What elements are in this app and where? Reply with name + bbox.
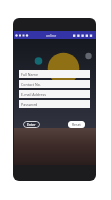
button[interactable]: Enter <box>23 121 40 128</box>
staticText: E-mail Address <box>21 92 46 97</box>
staticText: online <box>46 33 57 38</box>
other: Signal and battery <box>73 33 95 38</box>
button[interactable]: E-mail Address <box>19 90 90 98</box>
staticText: Reset <box>72 122 81 127</box>
button[interactable]: Password <box>19 100 90 108</box>
other: Notifications <box>15 33 30 38</box>
button[interactable]: Contact No. <box>19 80 90 88</box>
staticText: Enter <box>27 122 36 127</box>
button[interactable]: Full Name <box>19 70 90 78</box>
staticText: Full Name <box>21 72 39 77</box>
button[interactable]: Reset <box>68 121 85 128</box>
staticText: Contact No. <box>21 82 41 87</box>
staticText: Password <box>21 102 38 107</box>
